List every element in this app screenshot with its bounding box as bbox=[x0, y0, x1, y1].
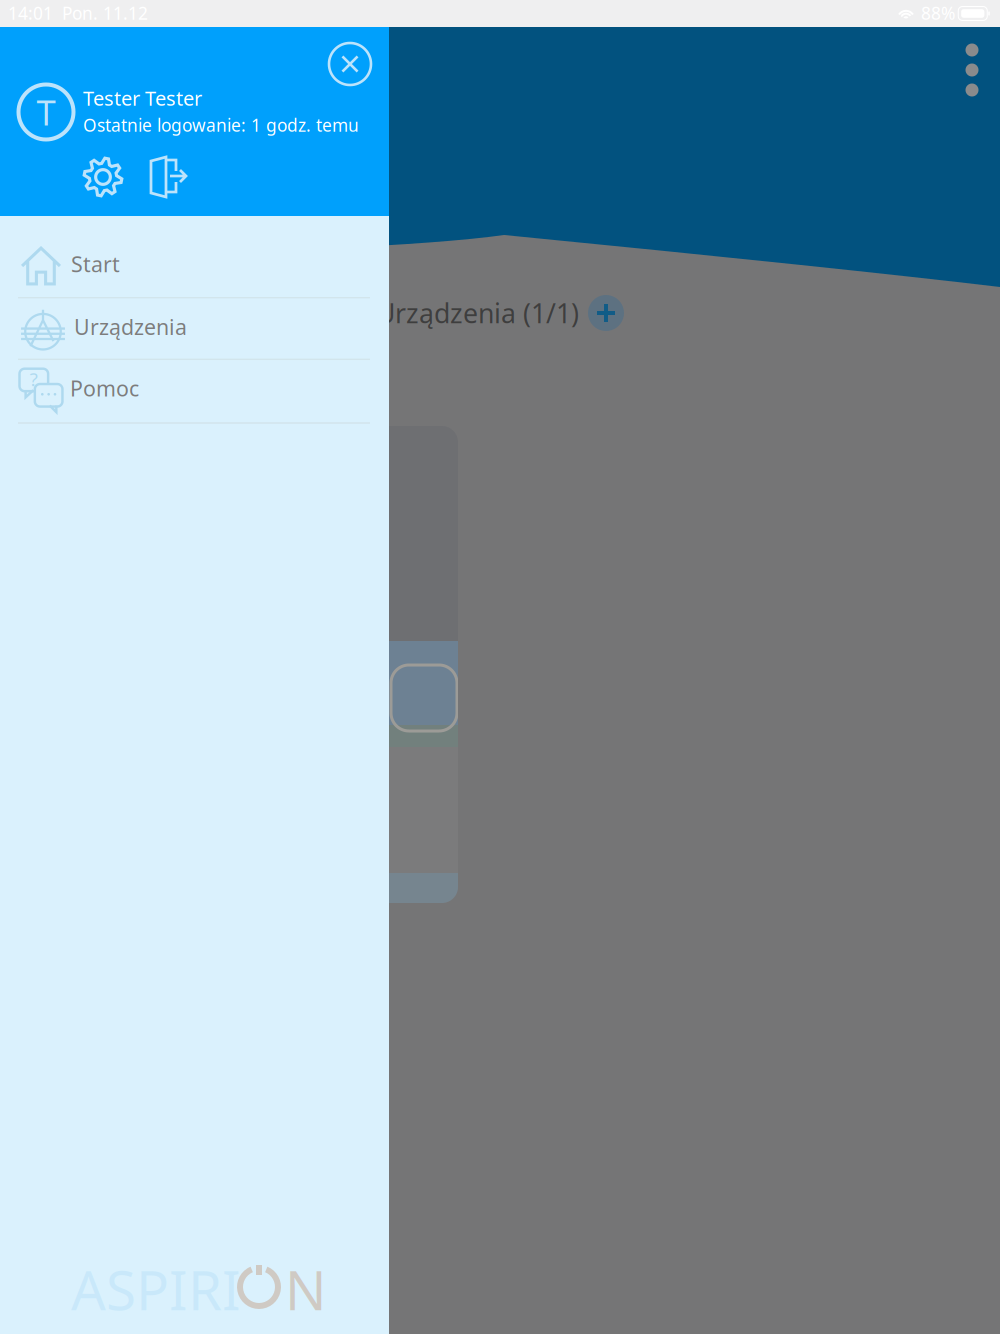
staticText: ASPIRI bbox=[71, 1253, 241, 1325]
staticText: N bbox=[285, 1253, 327, 1325]
staticText: Ostatnie logowanie: 1 godz. temu bbox=[83, 113, 359, 136]
button[interactable]: More options bbox=[942, 40, 1000, 100]
staticText: 88% bbox=[921, 1, 955, 24]
button[interactable]: Add device bbox=[583, 290, 629, 336]
button[interactable]: ? bbox=[0, 360, 389, 422]
staticText: Pomoc bbox=[70, 374, 139, 402]
staticText: T bbox=[36, 89, 55, 135]
staticText: Pon. 11.12 bbox=[62, 1, 148, 24]
staticText: Start bbox=[71, 250, 120, 278]
button[interactable]: Urządzenia bbox=[0, 299, 389, 359]
staticText: Tester Tester bbox=[83, 85, 202, 111]
staticText: Urządzenia (1/1) bbox=[376, 295, 579, 331]
button[interactable]: Log out bbox=[139, 149, 195, 205]
staticText: ? bbox=[30, 366, 38, 391]
staticText: 14:01 bbox=[8, 1, 53, 24]
button[interactable]: Start bbox=[0, 216, 389, 297]
button[interactable]: Close menu bbox=[319, 33, 381, 95]
button[interactable]: Settings bbox=[75, 149, 131, 205]
staticText: Urządzenia bbox=[74, 312, 187, 341]
